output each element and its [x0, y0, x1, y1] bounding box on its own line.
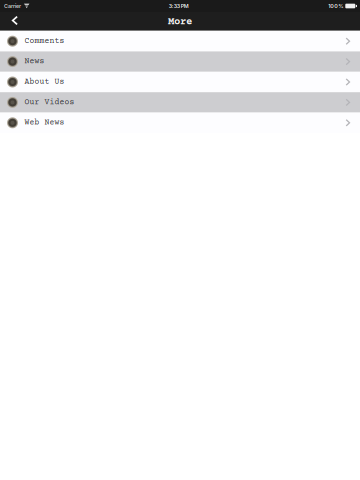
button[interactable]: News	[0, 51, 360, 72]
staticText: 100%	[328, 3, 343, 9]
staticText: News	[24, 57, 44, 66]
button[interactable]: About Us	[0, 72, 360, 92]
staticText: 3:33 PM	[169, 3, 189, 9]
staticText: More	[168, 16, 192, 28]
button[interactable]: Back	[0, 12, 28, 29]
staticText: Comments	[24, 37, 64, 46]
button[interactable]: Our Videos	[0, 92, 360, 113]
staticText: Carrier	[4, 3, 21, 9]
staticText: About Us	[24, 77, 64, 86]
staticText: Web News	[24, 118, 64, 127]
button[interactable]: Comments	[0, 31, 360, 51]
button[interactable]: Web News	[0, 113, 360, 133]
staticText: Our Videos	[24, 98, 74, 107]
